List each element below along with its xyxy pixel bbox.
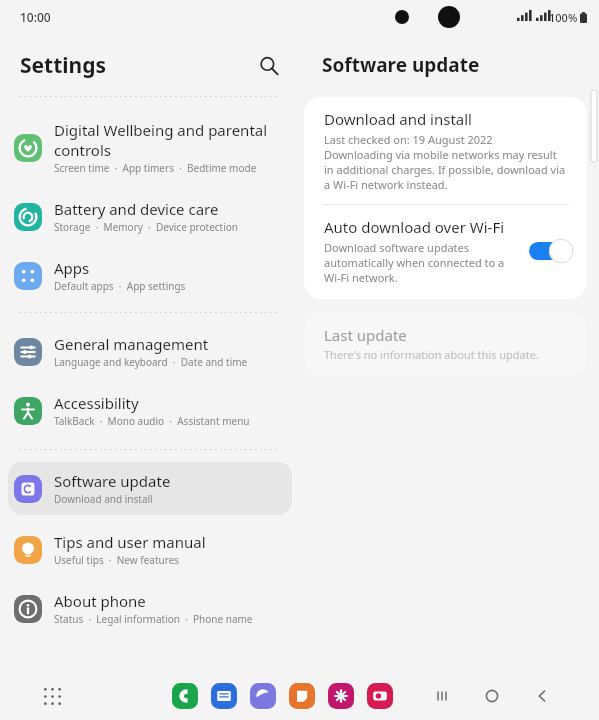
button[interactable]: Phone [172, 683, 198, 709]
button[interactable]: Auto download over Wi-Fi [304, 205, 587, 299]
button[interactable]: About phone [8, 582, 292, 635]
button[interactable]: Auto download over Wi-Fi toggle [529, 238, 575, 264]
staticText: Digital Wellbeing and parental controls [54, 120, 268, 160]
staticText: Software update [54, 471, 171, 491]
button[interactable]: Home [479, 683, 505, 709]
button[interactable]: Tips and user manual [8, 523, 292, 576]
button[interactable]: Battery and device care [8, 190, 292, 243]
staticText: Language and keyboard · Date and time [54, 355, 248, 369]
staticText: Status · Legal information · Phone name [54, 612, 253, 626]
staticText: Battery and device care [54, 199, 219, 219]
button[interactable]: Download and install [304, 97, 587, 204]
button[interactable]: Notes [289, 683, 315, 709]
staticText: TalkBack · Mono audio · Assistant menu [54, 414, 250, 428]
button[interactable]: Recents [429, 683, 455, 709]
staticText: Useful tips · New features [54, 553, 180, 567]
button[interactable]: Messages [211, 683, 237, 709]
button[interactable]: Search [252, 49, 284, 81]
staticText: General management [54, 334, 209, 354]
button[interactable]: Camera [367, 683, 393, 709]
staticText: Download and install [54, 492, 153, 506]
staticText: Software update [322, 52, 480, 78]
staticText: Downloading via mobile networks may resu… [324, 147, 569, 192]
button[interactable]: General management [8, 325, 292, 378]
staticText: Default apps · App settings [54, 279, 186, 293]
button[interactable]: Gallery [328, 683, 354, 709]
staticText: Apps [54, 258, 90, 278]
staticText: There's no information about this update… [324, 347, 539, 362]
button[interactable]: Software update [8, 462, 292, 515]
button[interactable]: Back [529, 683, 555, 709]
button[interactable]: Apps [8, 249, 292, 302]
button[interactable]: Internet [250, 683, 276, 709]
staticText: Download software updates automatically … [324, 240, 521, 285]
button[interactable]: Apps [38, 682, 66, 710]
staticText: Last update [324, 325, 407, 345]
staticText: Screen time · App timers · Bedtime mode [54, 161, 257, 175]
staticText: 100% [549, 10, 578, 25]
staticText: Storage · Memory · Device protection [54, 220, 239, 234]
staticText: Tips and user manual [54, 532, 206, 552]
staticText: Download and install [324, 109, 472, 129]
staticText: 10:00 [20, 9, 51, 25]
staticText: Accessibility [54, 393, 139, 413]
staticText: Settings [20, 51, 107, 80]
staticText: Auto download over Wi-Fi [324, 217, 505, 237]
staticText: Last checked on: 19 August 2022 [324, 132, 493, 147]
button[interactable]: Accessibility [8, 384, 292, 437]
button[interactable]: Digital Wellbeing and parental controls [8, 111, 292, 184]
staticText: About phone [54, 591, 146, 611]
